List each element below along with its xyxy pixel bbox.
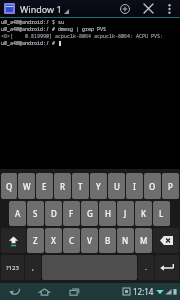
button[interactable]: S bbox=[27, 201, 44, 226]
staticText: u0_a40@android:/ # bbox=[1, 40, 59, 47]
button[interactable]: Z bbox=[27, 228, 44, 253]
staticText: K bbox=[141, 208, 147, 219]
button[interactable]: B bbox=[99, 228, 116, 253]
button[interactable]: M bbox=[135, 228, 152, 253]
staticText: X bbox=[51, 235, 56, 246]
staticText: . bbox=[145, 263, 147, 273]
button[interactable]: Close window bbox=[140, 0, 157, 17]
button[interactable]: New window bbox=[116, 0, 133, 17]
staticText: D bbox=[51, 208, 57, 219]
staticText: H bbox=[105, 208, 111, 219]
button[interactable]: P bbox=[162, 173, 179, 199]
button[interactable]: Back bbox=[3, 283, 25, 300]
button[interactable]: I bbox=[126, 173, 143, 199]
button[interactable]: D bbox=[45, 201, 62, 226]
button[interactable]: . bbox=[138, 255, 154, 280]
staticText: O bbox=[149, 181, 156, 192]
staticText: J bbox=[124, 208, 127, 219]
staticText: Window 1 bbox=[20, 3, 62, 15]
staticText: u0_a40@android:/ $ su bbox=[1, 19, 65, 26]
staticText: F bbox=[69, 208, 74, 219]
button[interactable]: E bbox=[36, 173, 53, 199]
staticText: B bbox=[105, 235, 111, 246]
staticText: U bbox=[114, 181, 120, 192]
button[interactable]: C bbox=[63, 228, 80, 253]
staticText: E bbox=[42, 181, 47, 192]
staticText: Z bbox=[33, 235, 38, 246]
button[interactable]: Q bbox=[1, 173, 17, 199]
staticText: P bbox=[168, 181, 173, 192]
staticText: S bbox=[33, 208, 38, 219]
staticText: W bbox=[23, 181, 31, 192]
button[interactable]: H bbox=[99, 201, 116, 226]
button[interactable]: K bbox=[135, 201, 152, 226]
staticText: M bbox=[140, 235, 148, 246]
button[interactable]: N bbox=[117, 228, 134, 253]
staticText: A bbox=[15, 208, 21, 219]
staticText: Q bbox=[6, 181, 13, 192]
button[interactable]: Window icon bbox=[4, 3, 15, 14]
staticText: T bbox=[78, 181, 83, 192]
button[interactable]: A bbox=[9, 201, 26, 226]
staticText: <6>[ 0.819990] acpuclk-8064 acpuclk-8064… bbox=[1, 33, 180, 40]
staticText: L bbox=[159, 208, 164, 219]
button[interactable]: , bbox=[25, 255, 41, 280]
staticText: I bbox=[133, 181, 136, 192]
button[interactable]: W bbox=[18, 173, 35, 199]
button[interactable]: J bbox=[117, 201, 134, 226]
staticText: G bbox=[87, 208, 93, 219]
staticText: Y bbox=[96, 181, 101, 192]
button[interactable]: Y bbox=[90, 173, 107, 199]
button[interactable]: O bbox=[144, 173, 161, 199]
staticText: C bbox=[69, 235, 75, 246]
button[interactable]: Backspace bbox=[153, 228, 179, 253]
staticText: , bbox=[32, 263, 34, 273]
button[interactable]: Recent apps bbox=[63, 283, 85, 300]
button[interactable]: Window 1 bbox=[20, 3, 71, 15]
button[interactable]: R bbox=[54, 173, 71, 199]
button[interactable]: V bbox=[81, 228, 98, 253]
button[interactable]: Enter bbox=[155, 255, 179, 280]
staticText: ?123 bbox=[6, 264, 19, 272]
button[interactable]: More options bbox=[162, 1, 177, 16]
staticText: V bbox=[87, 235, 92, 246]
staticText: R bbox=[60, 181, 66, 192]
staticText: N bbox=[122, 235, 129, 246]
button[interactable]: T bbox=[72, 173, 89, 199]
button[interactable]: Home bbox=[33, 283, 55, 300]
staticText: u0_a40@android:/ # dmesg | grep PVS bbox=[1, 26, 107, 33]
button[interactable]: Shift bbox=[1, 228, 26, 253]
staticText: 12:14 bbox=[133, 286, 154, 297]
button[interactable]: F bbox=[63, 201, 80, 226]
button[interactable]: U bbox=[108, 173, 125, 199]
button[interactable]: ?123 bbox=[1, 255, 24, 280]
button[interactable]: L bbox=[153, 201, 170, 226]
button[interactable]: G bbox=[81, 201, 98, 226]
button[interactable]: X bbox=[45, 228, 62, 253]
